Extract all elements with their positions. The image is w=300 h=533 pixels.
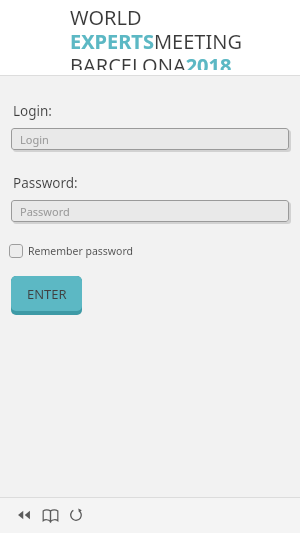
button[interactable]: Remember password (9, 244, 134, 258)
button[interactable]: ENTER (11, 276, 82, 315)
staticText: ENTER (27, 285, 67, 303)
staticText: Login: (13, 102, 52, 120)
button[interactable]: Bookmarks (38, 503, 62, 527)
button[interactable]: Back (12, 503, 36, 527)
staticText: Login (20, 132, 49, 147)
button[interactable]: Login (11, 128, 289, 150)
staticText: EXPERTSMEETING (70, 28, 242, 55)
staticText: Password: (13, 174, 78, 192)
staticText: BARCELONA2018 (70, 52, 232, 70)
staticText: Password (20, 204, 70, 219)
staticText: Remember password (28, 244, 134, 258)
button[interactable]: Password (11, 200, 289, 222)
button[interactable]: Reload (64, 503, 88, 527)
staticText: WORLD (70, 4, 142, 31)
